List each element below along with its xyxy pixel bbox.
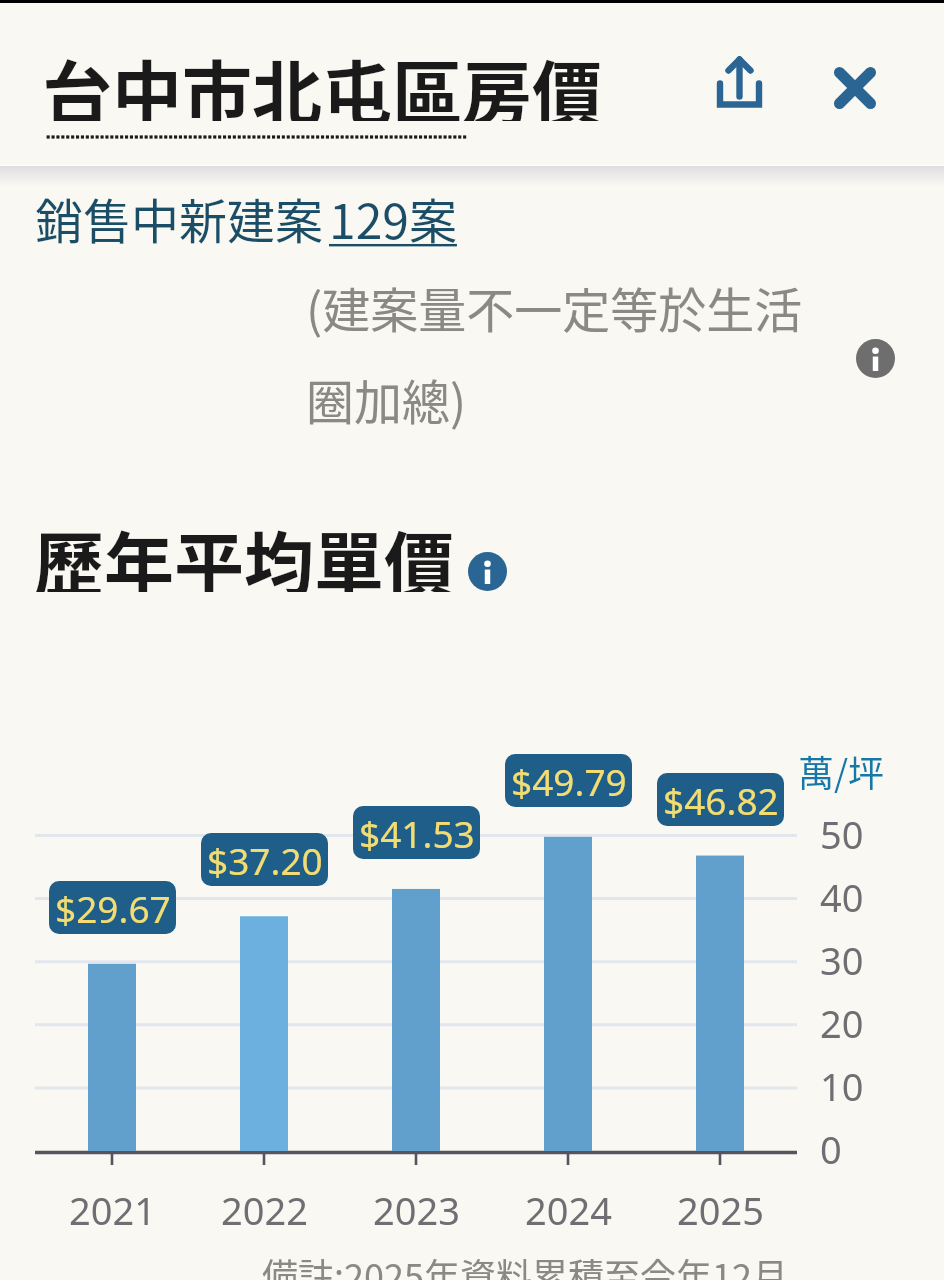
staticText: 30 — [820, 934, 864, 986]
staticText: 40 — [820, 871, 864, 923]
staticText: 2023 — [373, 1184, 460, 1232]
staticText: 50 — [820, 808, 864, 860]
staticText: $46.82 — [663, 775, 779, 825]
staticText: 0 — [820, 1123, 842, 1175]
staticText: $41.53 — [359, 808, 475, 858]
staticText: 10 — [820, 1060, 864, 1112]
staticText: 20 — [820, 997, 864, 1049]
button[interactable]: Share — [693, 34, 789, 130]
button[interactable]: $37.20 — [201, 833, 328, 886]
staticText: $49.79 — [511, 756, 627, 806]
button[interactable]: Info about average unit price — [458, 542, 516, 600]
button[interactable]: $46.82 — [657, 773, 784, 826]
button[interactable]: 歷年平均單價 — [34, 510, 464, 592]
staticText: 備註:2025年資料累積至今年12月 — [262, 1248, 788, 1280]
button[interactable]: Info about number of projects — [846, 329, 904, 387]
staticText: 台中市北屯區房價 — [42, 39, 602, 121]
button[interactable]: $41.53 — [353, 806, 480, 859]
staticText: 歷年平均單價 — [34, 510, 454, 592]
staticText: (建案量不一定等於生活 圈加總) — [306, 272, 803, 434]
staticText: 2025 — [677, 1184, 764, 1232]
staticText: $37.20 — [207, 835, 323, 885]
staticText: 2024 — [525, 1184, 612, 1232]
staticText: 萬/坪 — [798, 745, 885, 797]
staticText: 2022 — [221, 1184, 308, 1232]
staticText: 銷售中新建案 — [35, 183, 334, 249]
staticText: 129案 — [329, 183, 457, 249]
button[interactable]: 台中市北屯區房價 — [42, 39, 617, 121]
button[interactable]: 銷售中新建案 — [35, 183, 465, 249]
button[interactable]: $49.79 — [505, 754, 632, 807]
staticText: 2021 — [69, 1184, 156, 1232]
button[interactable]: Close — [807, 40, 903, 136]
staticText: $29.67 — [55, 883, 171, 933]
button[interactable]: $29.67 — [49, 881, 176, 934]
